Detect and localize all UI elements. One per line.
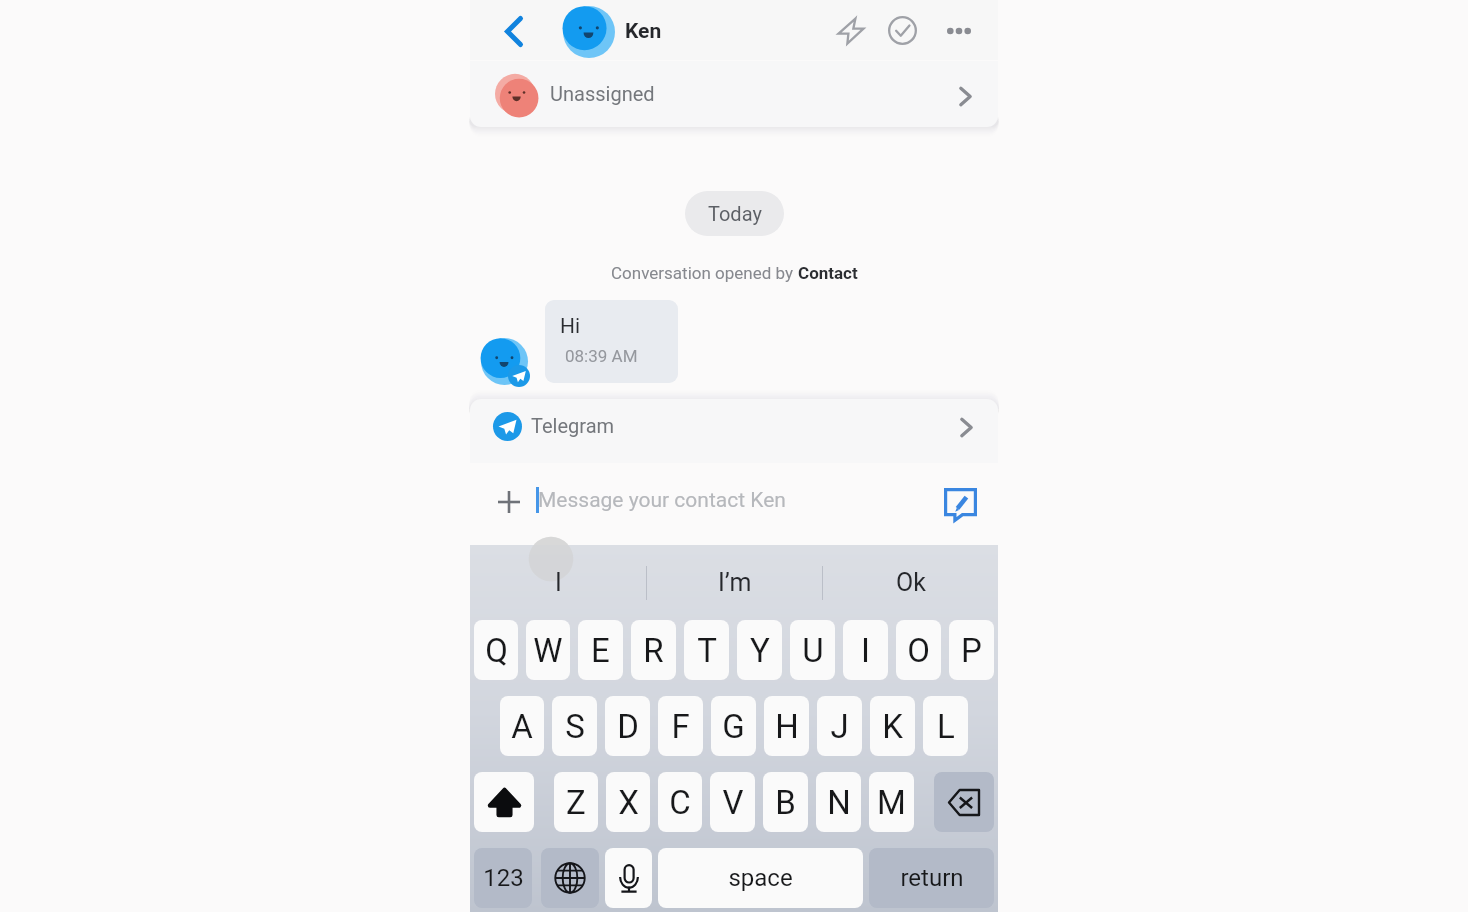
staticText: space [728,864,793,892]
button[interactable]: U [790,620,835,680]
button[interactable]: W [526,620,570,680]
staticText: J [830,707,849,746]
staticText: I [555,568,562,597]
button[interactable]: Shift [474,772,534,832]
button[interactable]: L [923,696,968,756]
staticText: Ken [625,19,662,44]
button[interactable]: Voice input [605,848,652,908]
button[interactable]: D [605,696,650,756]
button[interactable]: O [896,620,941,680]
staticText: K [882,707,903,746]
button[interactable]: E [578,620,623,680]
button[interactable]: Hi [545,300,678,383]
staticText: Z [566,783,586,822]
button[interactable]: Q [474,620,518,680]
staticText: V [722,783,744,822]
staticText: R [643,631,664,670]
staticText: return [900,864,964,892]
staticText: Ok [896,568,926,597]
staticText: F [671,707,690,746]
button[interactable]: G [711,696,756,756]
button[interactable]: Add private note [936,480,985,529]
staticText: O [907,631,930,670]
button[interactable]: H [764,696,809,756]
button[interactable]: Y [737,620,782,680]
staticText: X [618,783,639,822]
button[interactable]: I’m [647,545,822,620]
staticText: 08:39 AM [565,346,638,366]
button[interactable]: 123 [474,848,532,908]
button[interactable]: R [631,620,676,680]
button[interactable]: Add attachment [487,480,530,523]
staticText: G [722,707,745,746]
staticText: I [861,631,870,670]
button[interactable]: Backspace [934,772,994,832]
staticText: Today [708,202,762,225]
staticText: Telegram [531,414,615,437]
button[interactable]: X [606,772,650,832]
button[interactable]: Quick replies [828,8,873,53]
button[interactable]: Switch keyboard language [541,848,599,908]
staticText: Contact [798,263,858,283]
staticText: C [669,783,691,822]
staticText: I’m [718,568,752,597]
staticText: U [802,631,824,670]
button[interactable]: V [710,772,755,832]
staticText: W [533,631,563,670]
staticText: Hi [560,314,581,339]
staticText: S [565,707,585,746]
staticText: L [937,707,955,746]
button[interactable]: Resolve conversation [880,8,925,53]
button[interactable]: J [817,696,862,756]
button[interactable]: K [870,696,915,756]
button[interactable]: Back [492,9,536,53]
button[interactable]: Z [554,772,598,832]
button[interactable]: N [816,772,861,832]
button[interactable]: S [552,696,597,756]
staticText: T [697,631,717,670]
button[interactable]: A [500,696,544,756]
button[interactable]: Today [685,191,784,236]
button[interactable]: Unassigned [470,61,998,127]
staticText: 123 [483,864,524,892]
button[interactable]: B [763,772,808,832]
staticText: D [617,707,639,746]
button[interactable]: space [658,848,863,908]
staticText: A [511,707,533,746]
staticText: E [591,631,610,670]
button[interactable]: I [843,620,888,680]
staticText: Unassigned [550,82,655,105]
staticText: H [775,707,799,746]
staticText: Message your contact Ken [538,488,786,513]
staticText: Q [485,631,508,670]
button[interactable]: More options [936,8,981,53]
staticText: Conversation opened by [611,263,798,283]
staticText: M [877,783,906,822]
staticText: N [827,783,851,822]
staticText: Y [750,631,770,670]
staticText: P [961,631,982,670]
button[interactable]: return [869,848,994,908]
button[interactable]: T [684,620,729,680]
button[interactable]: F [658,696,703,756]
button[interactable]: I [470,545,646,620]
button[interactable]: Telegram [470,399,998,463]
button[interactable]: P [949,620,994,680]
staticText: B [775,783,796,822]
button[interactable]: C [658,772,702,832]
button[interactable]: M [869,772,914,832]
button[interactable]: Ok [823,545,998,620]
